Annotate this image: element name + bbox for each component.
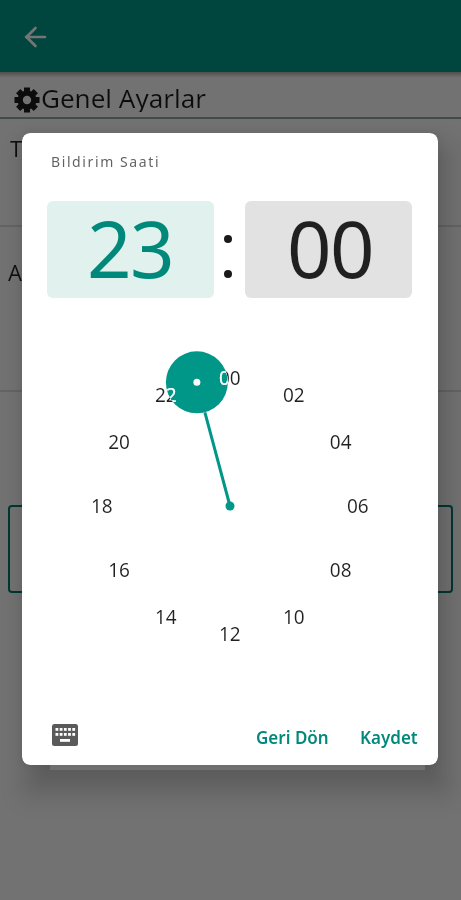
staticText: 23 <box>87 201 174 292</box>
staticText: Geri Dön <box>256 726 329 749</box>
button[interactable] <box>8 505 453 593</box>
button[interactable]: 00 <box>245 201 412 298</box>
staticText: Genel Ayarlar <box>41 80 207 112</box>
staticText: Tema <box>10 133 67 163</box>
button[interactable]: 23 <box>47 201 214 298</box>
staticText: Bildirim Saati <box>51 152 161 171</box>
staticText: Ana <box>8 257 48 287</box>
button[interactable]: Geri Dön <box>248 719 336 755</box>
staticText: 00 <box>287 201 374 292</box>
button[interactable] <box>44 715 86 755</box>
staticText: Kaydet <box>360 726 418 749</box>
button[interactable]: Kaydet <box>352 719 426 755</box>
button[interactable] <box>16 17 56 57</box>
